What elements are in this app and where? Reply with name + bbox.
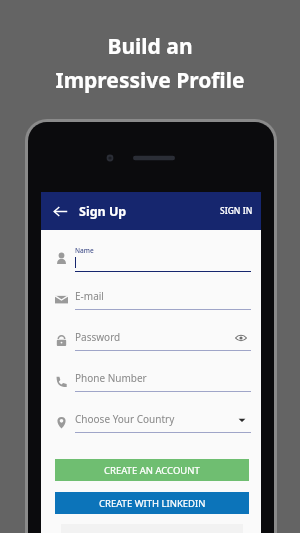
button[interactable]: Choose Your Country [47, 402, 251, 443]
button[interactable]: CREATE WITH LINKEDIN [55, 492, 249, 514]
staticText: E-mail [75, 289, 104, 303]
staticText: CREATE WITH LINKEDIN [99, 497, 206, 510]
staticText: Choose Your Country [75, 412, 175, 426]
button[interactable]: Show password [233, 330, 249, 346]
staticText: Build an [107, 32, 193, 61]
staticText: SIGN IN [220, 205, 253, 217]
staticText: Password [75, 330, 121, 344]
staticText: CREATE AN ACCOUNT [104, 464, 200, 477]
button[interactable]: Phone Number [47, 361, 251, 402]
button[interactable]: Back [47, 198, 73, 224]
staticText: Impressive Profile [55, 66, 245, 95]
staticText: Sign Up [79, 203, 127, 220]
button[interactable]: E-mail [47, 279, 251, 320]
button[interactable]: Password [47, 320, 251, 361]
staticText: Name [75, 246, 94, 255]
staticText: Phone Number [75, 371, 147, 385]
button[interactable]: CREATE AN ACCOUNT [55, 459, 249, 481]
button[interactable]: SIGN IN [212, 197, 261, 225]
button[interactable]: Name [47, 238, 251, 279]
button[interactable]: Choose Your Country [235, 413, 249, 427]
